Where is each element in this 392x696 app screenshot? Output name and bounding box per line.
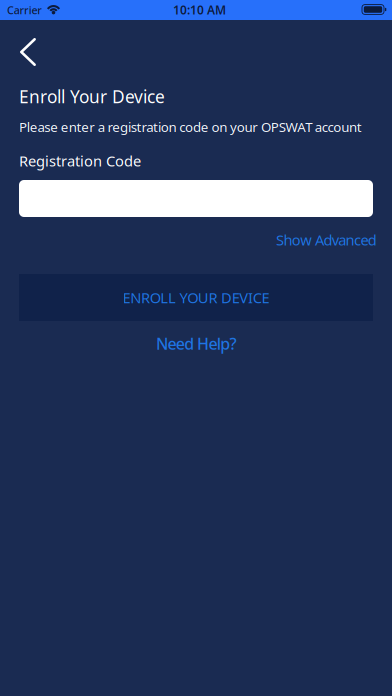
staticText: Carrier bbox=[7, 3, 42, 17]
staticText: Please enter a registration code on your… bbox=[19, 118, 362, 136]
button[interactable]: Back bbox=[0, 30, 58, 74]
staticText: Enroll Your Device bbox=[19, 85, 165, 108]
staticText: Show Advanced bbox=[276, 230, 377, 249]
staticText: Need Help? bbox=[156, 333, 237, 354]
button[interactable]: Show Advanced bbox=[272, 226, 381, 253]
button[interactable]: Need Help? bbox=[150, 329, 243, 358]
staticText: ENROLL YOUR DEVICE bbox=[122, 288, 269, 307]
staticText: 10:10 AM bbox=[173, 2, 226, 18]
button[interactable]: ENROLL YOUR DEVICE bbox=[19, 274, 373, 321]
staticText: Registration Code bbox=[19, 151, 141, 170]
